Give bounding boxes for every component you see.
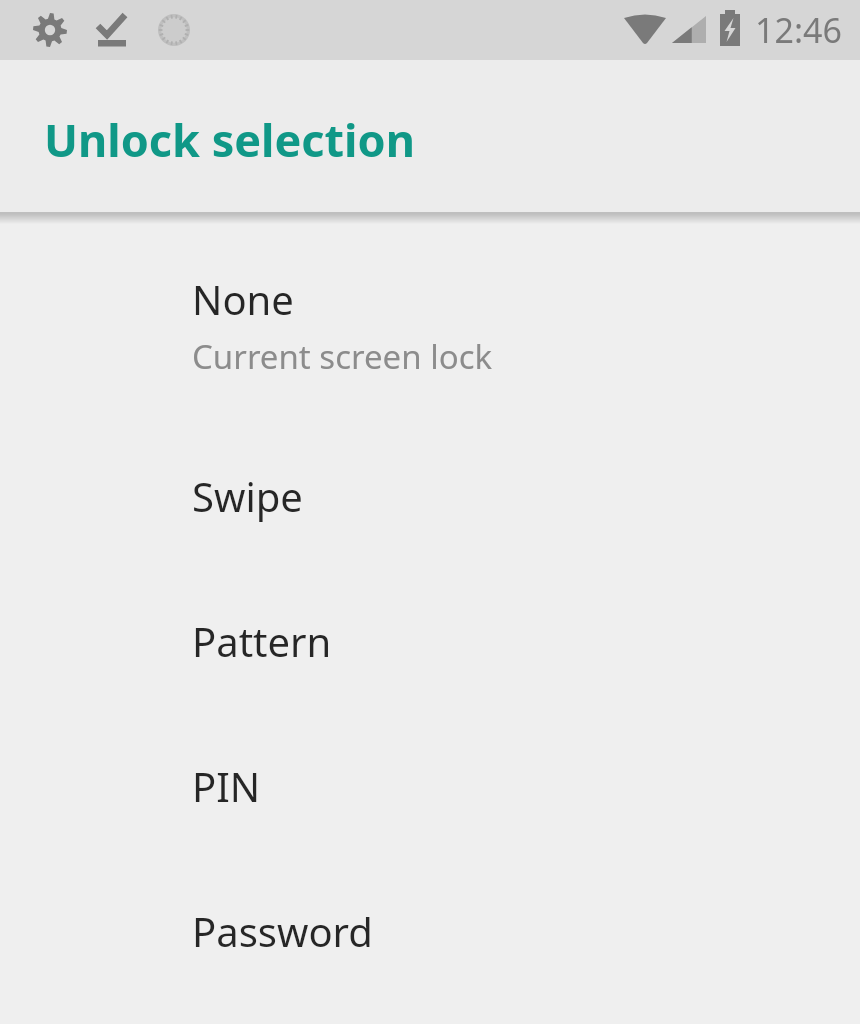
staticText: Password [192, 904, 373, 958]
button[interactable]: Password [0, 904, 860, 1024]
staticText: Pattern [192, 614, 332, 668]
staticText: Unlock selection [44, 109, 415, 170]
button[interactable]: Swipe [0, 469, 860, 614]
button[interactable]: None [0, 272, 860, 417]
button[interactable]: Pattern [0, 614, 860, 759]
other: Syncing [146, 8, 202, 52]
staticText: 12:46 [755, 7, 842, 53]
other: Download complete [84, 8, 140, 52]
staticText: Swipe [192, 469, 303, 523]
staticText: PIN [192, 759, 261, 813]
staticText: Current screen lock [192, 334, 493, 379]
button[interactable]: PIN [0, 759, 860, 904]
staticText: None [192, 272, 294, 326]
other: Settings notification [22, 8, 78, 52]
